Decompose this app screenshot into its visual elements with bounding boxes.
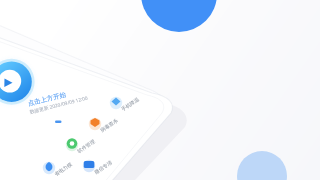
button[interactable] [41, 159, 57, 175]
staticText: 微信专清 [93, 159, 113, 175]
button[interactable] [108, 94, 124, 110]
staticText: 点击上方开始 [27, 91, 67, 108]
button[interactable]: Start scan [0, 51, 42, 111]
button[interactable]: Detail [55, 119, 63, 125]
staticText: 病毒查杀 [99, 117, 119, 133]
button[interactable] [81, 157, 97, 173]
staticText: 数据更新 2020/09/09 12:00 [29, 94, 89, 116]
button[interactable] [87, 115, 103, 131]
staticText: 手机降温 [120, 96, 140, 112]
staticText: 软件管理 [76, 138, 96, 154]
staticText: 省电力模 [53, 161, 73, 177]
button[interactable] [64, 136, 80, 152]
